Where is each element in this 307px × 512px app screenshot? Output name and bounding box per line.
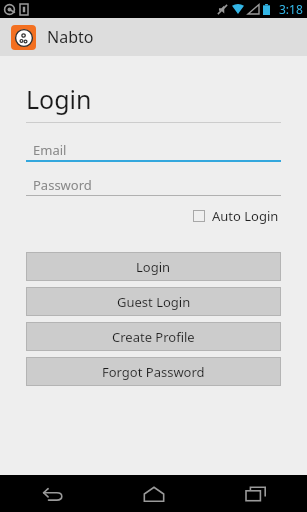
button[interactable]: Auto Login — [191, 204, 281, 228]
button[interactable]: Recent apps — [205, 475, 307, 512]
staticText: Login — [26, 82, 92, 116]
staticText: Auto Login — [212, 207, 279, 225]
staticText: 3:18 — [279, 1, 303, 17]
button[interactable]: Home — [103, 475, 205, 512]
button[interactable]: Forgot Password — [26, 357, 281, 386]
button[interactable]: Email — [26, 139, 281, 162]
button[interactable]: Guest Login — [26, 287, 281, 316]
button[interactable]: Create Profile — [26, 322, 281, 351]
staticText: Create Profile — [112, 328, 195, 346]
staticText: Email — [33, 141, 67, 159]
button[interactable]: Back — [0, 475, 103, 512]
staticText: Nabto — [47, 26, 94, 48]
staticText: Password — [33, 176, 92, 194]
staticText: Guest Login — [117, 293, 191, 311]
staticText: Forgot Password — [102, 363, 205, 381]
button[interactable]: Password — [26, 174, 281, 196]
staticText: Login — [136, 258, 171, 276]
button[interactable]: Login — [26, 252, 281, 281]
